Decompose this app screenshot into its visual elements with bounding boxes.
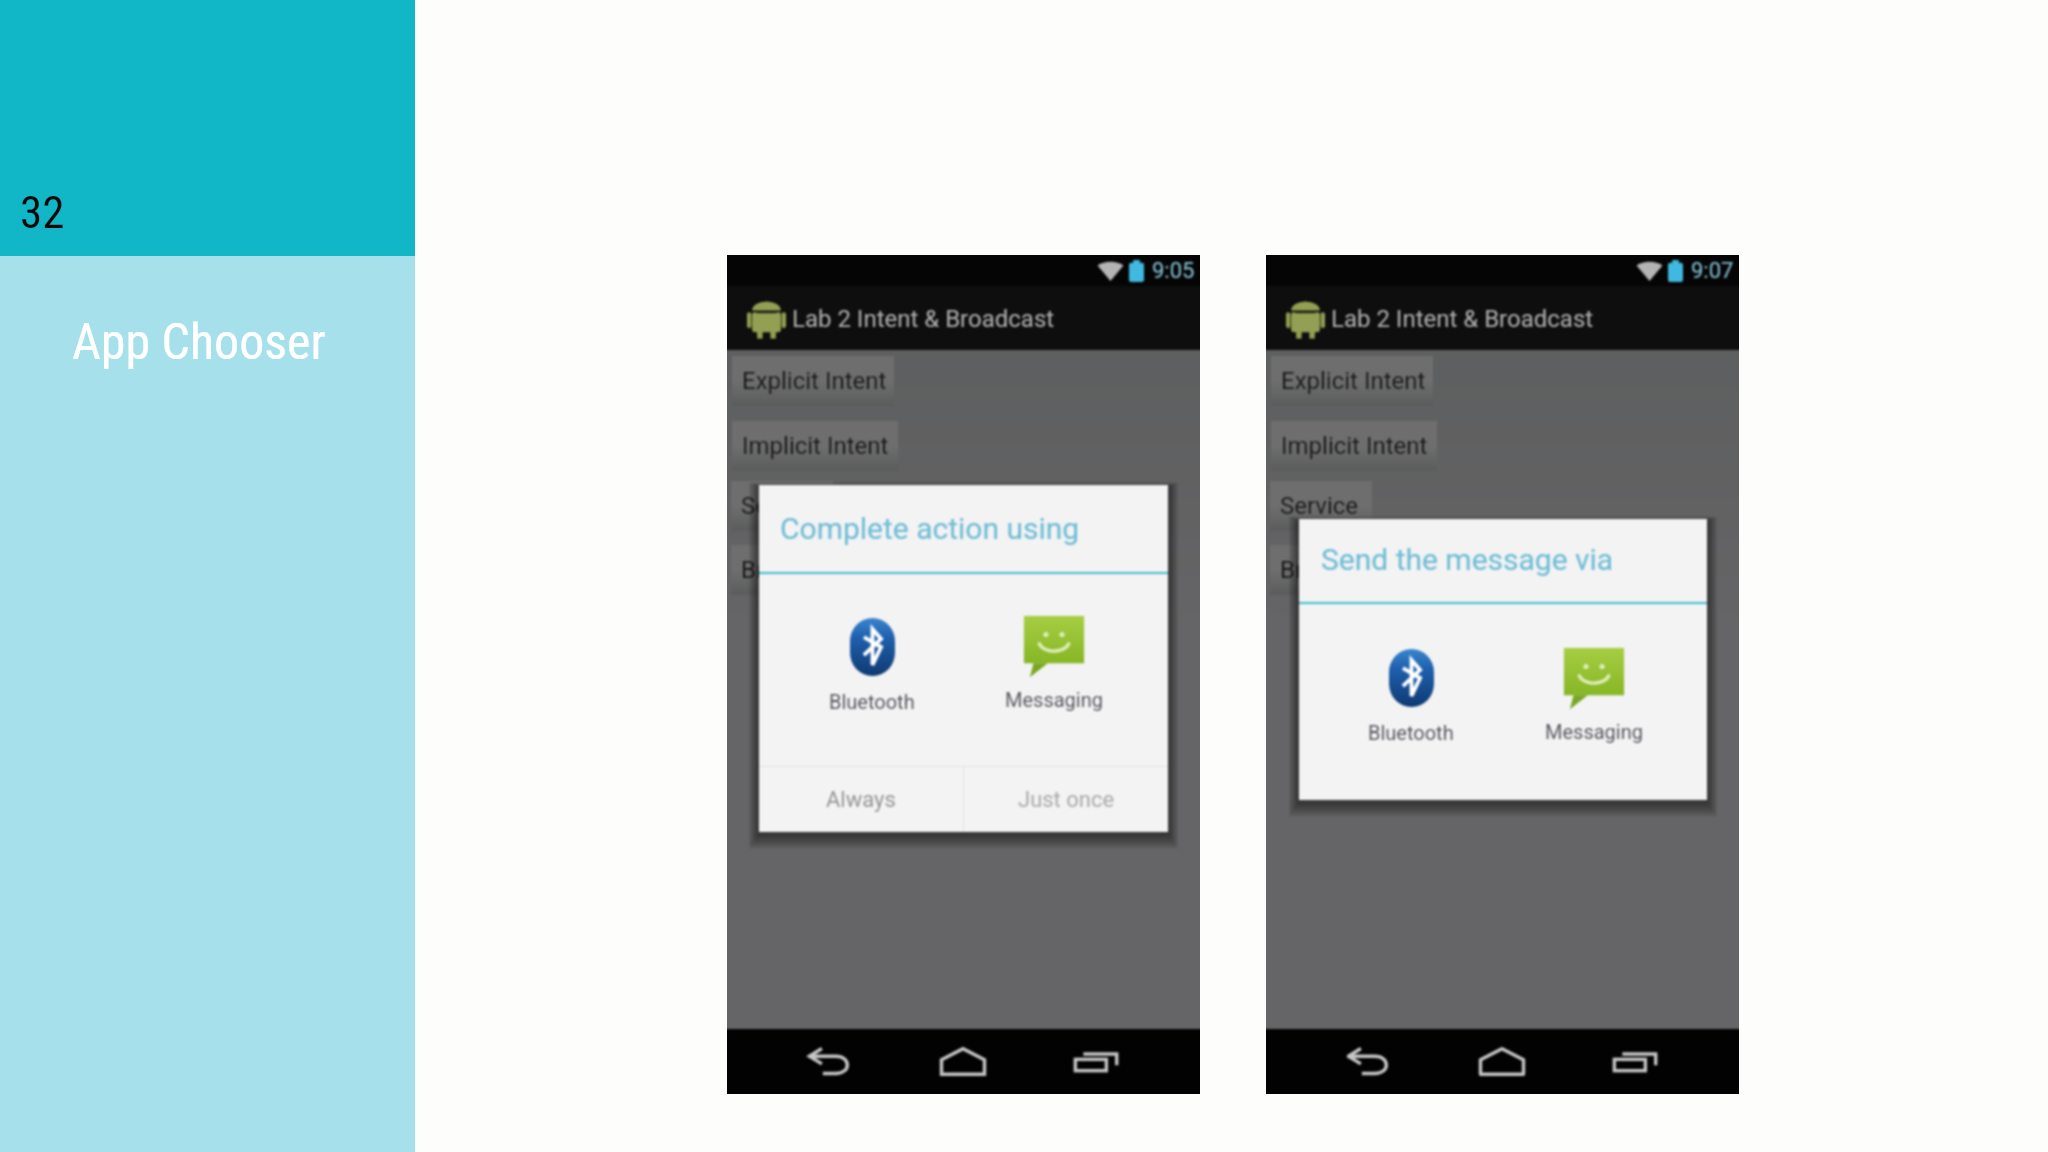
button[interactable]: Just once (964, 767, 1168, 832)
staticText: App Chooser (72, 313, 326, 372)
staticText: Service (1280, 492, 1359, 520)
staticText: Lab 2 Intent & Broadcast (1331, 305, 1594, 333)
staticText: Messaging (1545, 720, 1643, 743)
button[interactable]: Always (759, 767, 963, 832)
button[interactable]: Implicit Intent (732, 421, 898, 471)
button[interactable]: Messaging (992, 600, 1116, 721)
staticText: Service (741, 492, 820, 520)
staticText: 32 (20, 186, 65, 239)
staticText: Explicit Intent (1281, 367, 1426, 395)
button[interactable]: Back (785, 1029, 877, 1094)
staticText: Always (826, 787, 896, 813)
staticText: Complete action using (780, 511, 1080, 546)
button[interactable]: Broadcast (731, 545, 853, 595)
button[interactable]: Messaging (1532, 632, 1656, 753)
staticText: Bluetooth (1368, 721, 1454, 744)
button[interactable]: Broadcast (1270, 545, 1392, 595)
button[interactable]: Service (1270, 481, 1372, 531)
button[interactable]: Implicit Intent (1271, 421, 1437, 471)
button[interactable]: Recent apps (1589, 1029, 1681, 1094)
staticText: Messaging (1005, 688, 1103, 711)
staticText: Explicit Intent (742, 367, 887, 395)
staticText: Bluetooth (829, 690, 915, 713)
button[interactable]: Bluetooth (810, 604, 934, 723)
staticText: 9:05 (1152, 258, 1195, 284)
staticText: Just once (1018, 787, 1115, 813)
button[interactable]: Explicit Intent (1271, 356, 1433, 406)
button[interactable]: Explicit Intent (732, 356, 894, 406)
staticText: Broadcast (1280, 556, 1389, 584)
staticText: 9:07 (1691, 258, 1734, 284)
button[interactable]: Recent apps (1050, 1029, 1142, 1094)
staticText: Implicit Intent (1281, 432, 1428, 460)
button[interactable]: Home (1456, 1029, 1548, 1094)
button[interactable]: Home (917, 1029, 1009, 1094)
button[interactable]: Bluetooth (1349, 635, 1473, 754)
button[interactable]: Service (731, 481, 833, 531)
staticText: Send the message via (1321, 542, 1614, 577)
button[interactable]: Back (1324, 1029, 1416, 1094)
staticText: Implicit Intent (742, 432, 889, 460)
staticText: Broadcast (741, 556, 850, 584)
staticText: Lab 2 Intent & Broadcast (792, 305, 1055, 333)
